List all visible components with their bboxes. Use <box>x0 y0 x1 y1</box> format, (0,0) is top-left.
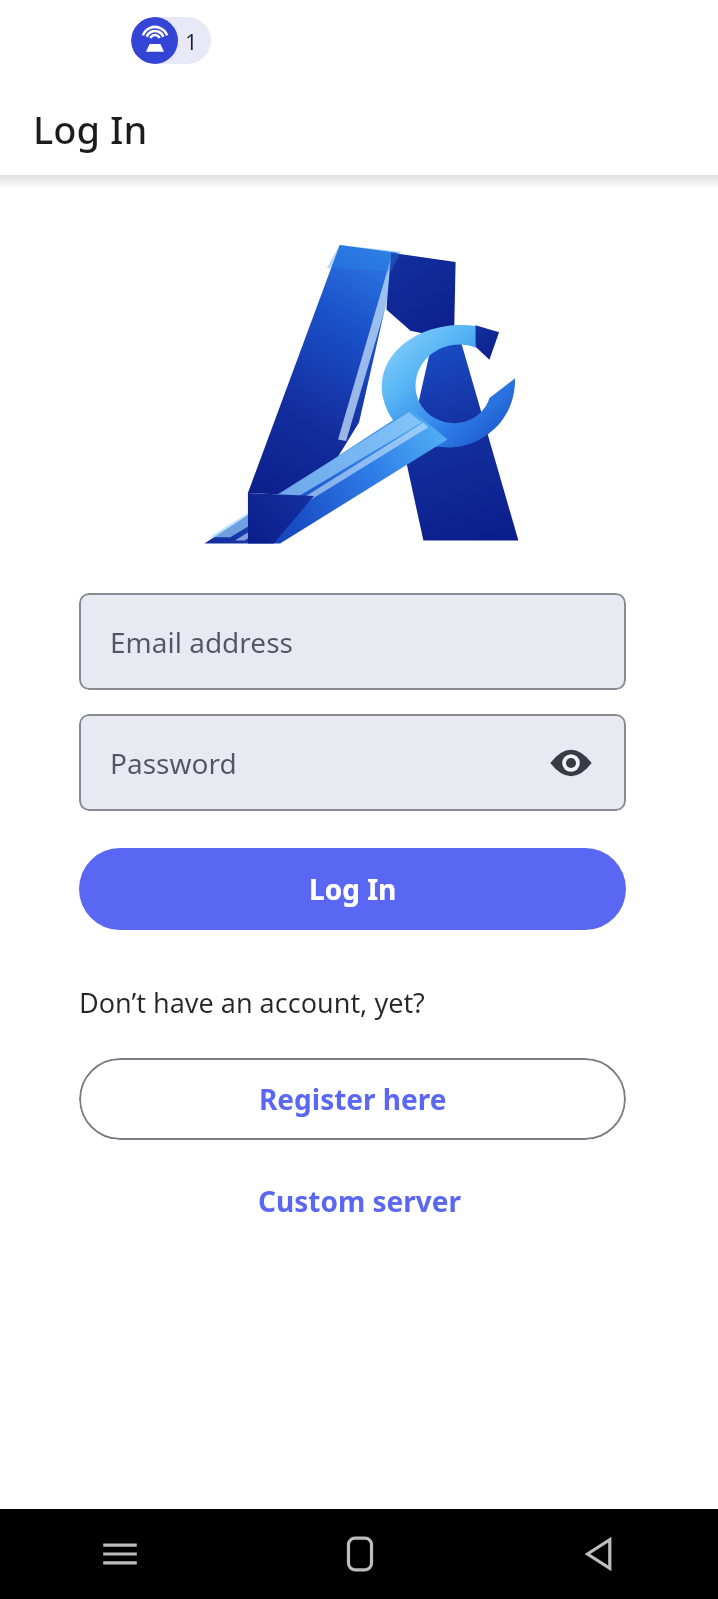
button[interactable]: Email address <box>79 593 626 690</box>
button[interactable]: Register here <box>79 1058 626 1140</box>
staticText: Password <box>110 744 237 782</box>
button[interactable]: Custom server <box>246 1172 473 1230</box>
button[interactable]: Password <box>79 714 626 811</box>
staticText: Register here <box>259 1080 447 1118</box>
button[interactable]: Recent apps <box>0 1509 240 1599</box>
staticText: Log In <box>309 870 397 908</box>
button[interactable]: Show password <box>544 736 598 790</box>
staticText: Don’t have an account, yet? <box>79 984 425 1021</box>
staticText: Log In <box>33 103 148 155</box>
button[interactable]: Home <box>240 1509 479 1599</box>
button[interactable]: Log In <box>79 848 626 930</box>
button[interactable]: Back <box>479 1509 718 1599</box>
staticText: Email address <box>110 623 293 661</box>
button[interactable]: Network indicator <box>131 17 211 64</box>
staticText: 1 <box>185 26 198 56</box>
staticText: Custom server <box>258 1182 461 1220</box>
